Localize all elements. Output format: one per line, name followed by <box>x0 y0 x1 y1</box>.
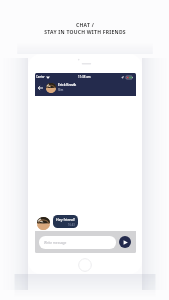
button[interactable]: Hey friend! <box>53 215 78 228</box>
staticText: Slim <box>58 88 64 92</box>
button[interactable]: Back <box>37 83 44 93</box>
staticText: Erick Krovik <box>58 83 77 87</box>
staticText: 11:38 am <box>78 75 91 79</box>
staticText: 16:43 <box>68 223 75 227</box>
staticText: CHAT / <box>76 22 94 29</box>
button[interactable]: Write message <box>39 236 116 249</box>
staticText: Write message <box>44 241 67 245</box>
staticText: Carrier <box>36 75 45 79</box>
staticText: Hey friend! <box>56 217 75 222</box>
button[interactable]: Send <box>119 236 131 248</box>
staticText: STAY IN TOUCH WITH FRIENDS <box>44 29 126 36</box>
